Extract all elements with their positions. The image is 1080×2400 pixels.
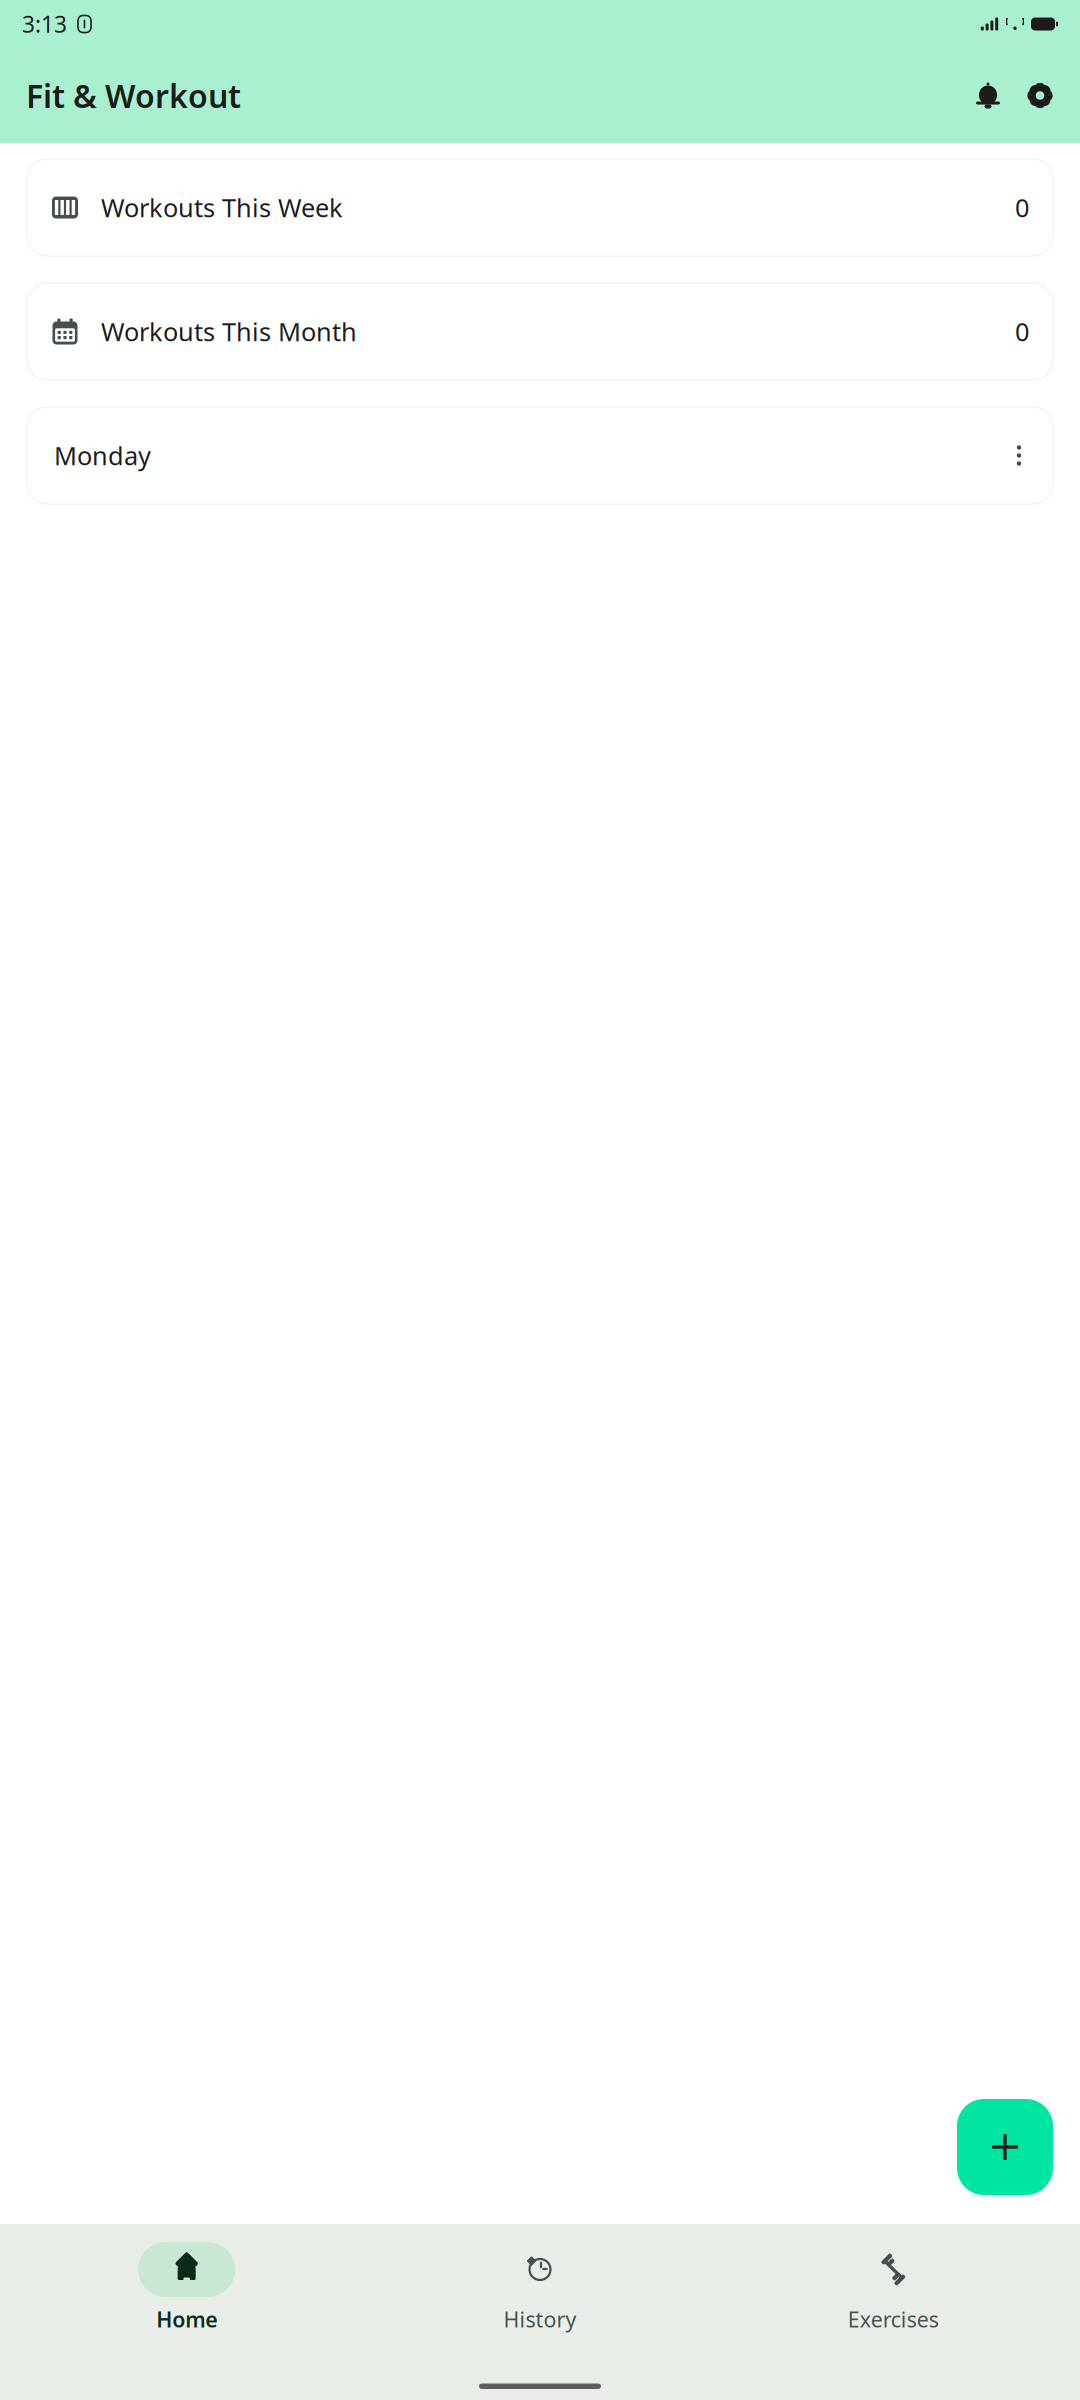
staticText: Monday [54, 439, 151, 472]
staticText: 0 [1015, 315, 1029, 348]
staticText: Home [156, 2305, 217, 2333]
staticText: Workouts This Month [101, 315, 357, 348]
staticText: Exercises [848, 2305, 939, 2333]
staticText: 0 [1015, 191, 1029, 224]
staticText: Workouts This Week [101, 191, 343, 224]
button[interactable]: Monday [27, 407, 1053, 504]
button[interactable]: Home [10, 2242, 363, 2333]
button[interactable]: Add workout [957, 2099, 1053, 2195]
button[interactable]: Workouts This Week [27, 159, 1053, 256]
staticText: Fit & Workout [26, 74, 241, 117]
staticText: History [503, 2305, 576, 2333]
button[interactable]: Settings [1014, 69, 1066, 121]
staticText: 3:13 [22, 9, 67, 39]
button[interactable]: History [363, 2242, 717, 2333]
button[interactable]: Workouts This Month [27, 283, 1053, 380]
button[interactable]: Exercises [717, 2242, 1070, 2333]
button[interactable]: Notifications [962, 69, 1014, 121]
